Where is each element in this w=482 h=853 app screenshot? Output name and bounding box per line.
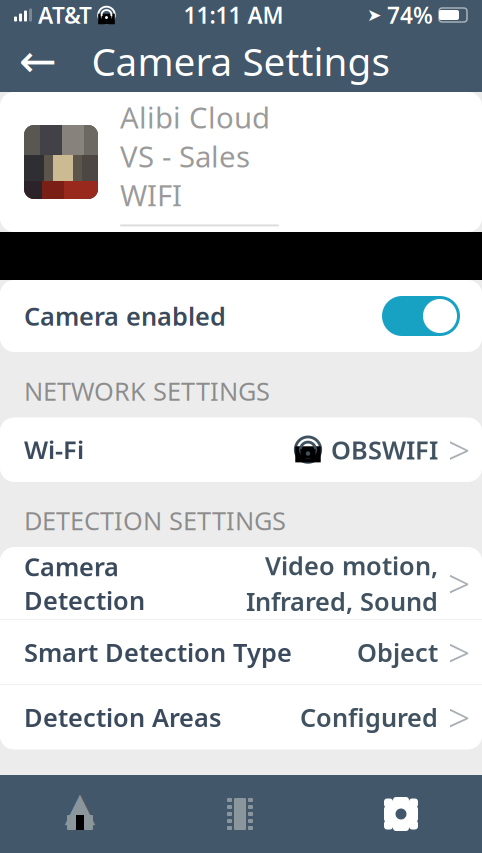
staticText: >: [447, 691, 470, 744]
button[interactable]: Smart Detection Type: [0, 620, 482, 684]
staticText: OBSWIFI: [331, 433, 438, 466]
staticText: Camera Detection: [24, 550, 145, 617]
button[interactable]: Camera enabled: [0, 280, 482, 352]
button[interactable]: Home: [0, 775, 160, 853]
staticText: 74%: [387, 0, 433, 30]
staticText: >: [447, 557, 470, 610]
button[interactable]: Detection Areas: [0, 685, 482, 749]
staticText: ←: [19, 35, 57, 87]
staticText: Infrared, Sound: [246, 584, 438, 618]
staticText: >: [447, 626, 470, 679]
staticText: Alibi Cloud VS - Sales WIFI: [120, 98, 270, 214]
staticText: AT&T: [38, 0, 92, 30]
button[interactable]: Back: [0, 35, 58, 87]
staticText: Wi-Fi: [24, 433, 84, 466]
button[interactable]: Recordings: [160, 775, 320, 853]
staticText: Configured: [300, 700, 438, 734]
staticText: NETWORK SETTINGS: [24, 374, 270, 408]
staticText: Smart Detection Type: [24, 635, 292, 669]
button[interactable]: Settings: [320, 775, 482, 853]
staticText: ➤: [367, 5, 382, 25]
staticText: Camera Settings: [91, 35, 390, 87]
button[interactable]: Camera Detection: [0, 547, 482, 619]
button[interactable]: Wi-Fi: [0, 418, 482, 482]
staticText: Video motion,: [265, 549, 438, 582]
staticText: DETECTION SETTINGS: [24, 504, 286, 537]
staticText: Camera enabled: [24, 299, 226, 333]
staticText: Detection Areas: [24, 700, 221, 734]
staticText: 11:11 AM: [183, 0, 283, 30]
staticText: Object: [357, 635, 438, 669]
staticText: ▲: [64, 784, 95, 829]
staticText: >: [447, 423, 470, 476]
